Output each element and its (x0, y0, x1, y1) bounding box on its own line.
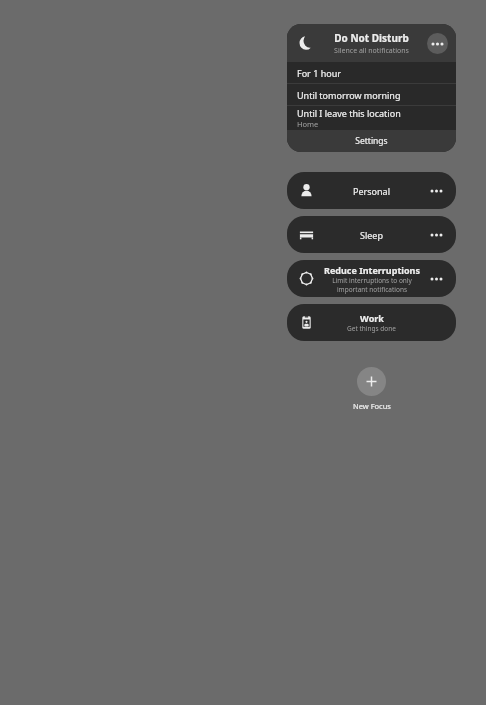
staticText: Personal (353, 185, 390, 197)
staticText: Limit interruptions to only important no… (332, 276, 412, 294)
staticText: Reduce Interruptions (324, 264, 420, 276)
button[interactable]: Until I leave this location (287, 106, 456, 130)
staticText: New Focus (353, 401, 391, 411)
staticText: Work (360, 312, 384, 324)
staticText: Do Not Disturb (334, 31, 409, 45)
button[interactable]: Reduce Interruptions (287, 260, 456, 297)
staticText: Until tomorrow morning (297, 89, 401, 101)
button[interactable]: More options for Reduce Interruptions (426, 269, 446, 289)
button[interactable]: More options (427, 33, 448, 54)
staticText: Sleep (360, 229, 383, 241)
button[interactable]: Personal (287, 172, 456, 209)
button[interactable]: Work (287, 304, 456, 341)
staticText: Silence all notifications (334, 46, 409, 56)
button[interactable]: For 1 hour (287, 62, 456, 83)
button[interactable]: More options for Personal (426, 181, 446, 201)
button[interactable]: More options for Sleep (426, 225, 446, 245)
button[interactable]: Sleep (287, 216, 456, 253)
button[interactable]: Until tomorrow morning (287, 84, 456, 105)
staticText: Get things done (347, 324, 396, 333)
staticText: Until I leave this location (297, 107, 401, 119)
staticText: Settings (355, 135, 388, 147)
button[interactable]: Settings (287, 130, 456, 152)
button[interactable]: New Focus (357, 367, 386, 396)
staticText: For 1 hour (297, 67, 341, 79)
button[interactable]: Do Not Disturb (287, 24, 456, 62)
staticText: Home (297, 119, 319, 129)
